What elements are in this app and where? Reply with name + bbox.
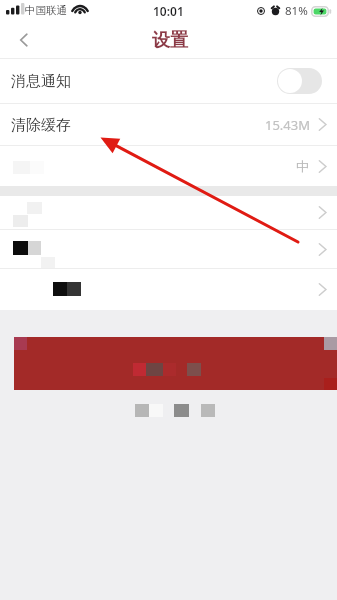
staticText: 中: [296, 158, 309, 174]
staticText: 10:01: [153, 3, 184, 19]
button[interactable]: Toggle message notifications: [277, 68, 322, 94]
staticText: 消息通知: [11, 72, 71, 91]
staticText: 15.43M: [265, 116, 311, 134]
staticText: 中国联通: [25, 4, 67, 17]
button[interactable]: [0, 230, 337, 268]
staticText: 清除缓存: [11, 116, 71, 135]
button[interactable]: [0, 196, 337, 229]
button[interactable]: Logout: [14, 337, 337, 390]
staticText: 设置: [152, 29, 188, 52]
staticText: 81%: [285, 3, 308, 19]
button[interactable]: 消息通知: [0, 59, 337, 103]
button[interactable]: 中: [0, 146, 337, 186]
button[interactable]: 清除缓存: [0, 104, 337, 145]
button[interactable]: [0, 269, 337, 310]
button[interactable]: Back: [6, 22, 42, 58]
